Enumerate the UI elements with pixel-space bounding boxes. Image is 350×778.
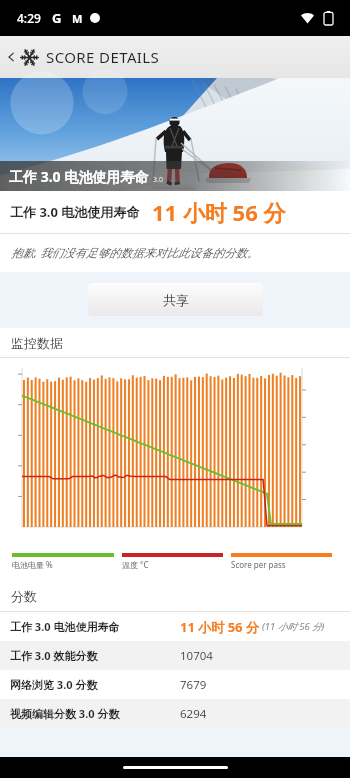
staticText: 11 小时 56 分 bbox=[152, 197, 286, 227]
staticText: M bbox=[72, 11, 83, 26]
staticText: 电池电量 % bbox=[12, 559, 53, 570]
button[interactable]: 共享 bbox=[88, 283, 263, 316]
staticText: G bbox=[52, 9, 62, 27]
staticText: 共享 bbox=[163, 292, 189, 308]
button[interactable]: 工作 3.0 电池使用寿命 bbox=[0, 612, 350, 641]
staticText: (11 小时 56 分) bbox=[262, 620, 325, 633]
button[interactable]: 工作 3.0 效能分数 bbox=[0, 641, 350, 670]
staticText: 工作 3.0 效能分数 bbox=[10, 648, 180, 663]
staticText: 4:29 bbox=[17, 10, 41, 26]
button[interactable]: SCORE DETAILS bbox=[0, 36, 350, 78]
staticText: 工作 3.0 电池使用寿命 bbox=[10, 619, 180, 634]
staticText: 工作 3.0 电池使用寿命 bbox=[9, 167, 149, 186]
staticText: 11 小时 56 分 bbox=[180, 618, 259, 636]
staticText: 网络浏览 3.0 分数 bbox=[10, 677, 180, 692]
staticText: SCORE DETAILS bbox=[46, 47, 160, 67]
staticText: 工作 3.0 电池使用寿命 bbox=[10, 203, 140, 221]
staticText: Score per pass bbox=[231, 559, 286, 570]
staticText: 抱歉, 我们没有足够的数据来对比此设备的分数。 bbox=[11, 245, 259, 261]
staticText: 7679 bbox=[180, 677, 207, 693]
button[interactable]: 视频编辑分数 3.0 分数 bbox=[0, 699, 350, 728]
staticText: 3.0 bbox=[153, 175, 163, 185]
staticText: 温度 °C bbox=[122, 559, 149, 570]
staticText: 监控数据 bbox=[11, 335, 63, 351]
staticText: 6294 bbox=[180, 706, 207, 722]
button[interactable]: 网络浏览 3.0 分数 bbox=[0, 670, 350, 699]
staticText: 视频编辑分数 3.0 分数 bbox=[10, 706, 180, 721]
staticText: 10704 bbox=[180, 648, 213, 664]
staticText: 分数 bbox=[11, 588, 37, 604]
